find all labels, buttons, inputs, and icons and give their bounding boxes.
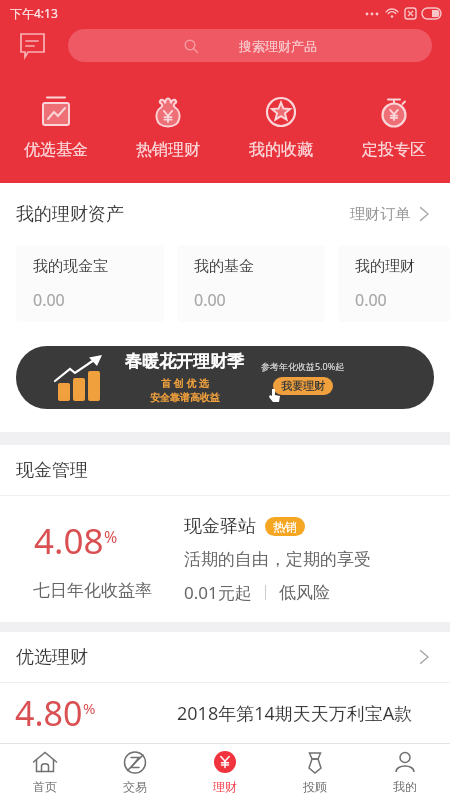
- staticText: 我的收藏: [249, 140, 313, 160]
- staticText: 4.80: [15, 690, 83, 736]
- staticText: 搜索理财产品: [239, 38, 317, 54]
- staticText: 安全靠谱高收益: [150, 391, 220, 404]
- staticText: 低风险: [279, 582, 330, 603]
- staticText: 0.00: [194, 289, 226, 311]
- button[interactable]: 理财: [180, 744, 270, 800]
- staticText: 我的理财: [355, 257, 415, 276]
- staticText: 投顾: [303, 779, 327, 794]
- staticText: 现金管理: [16, 459, 88, 482]
- button[interactable]: 我的现金宝: [16, 245, 164, 322]
- staticText: 0.00: [355, 289, 387, 311]
- button[interactable]: 我的收藏: [224, 95, 337, 160]
- button[interactable]: 首页: [0, 744, 90, 800]
- staticText: 热销理财: [136, 140, 200, 160]
- staticText: 0.00: [33, 289, 65, 311]
- staticText: 七日年化收益率: [33, 580, 152, 601]
- staticText: 现金驿站: [184, 515, 256, 538]
- staticText: 春暖花开理财季: [125, 351, 244, 372]
- staticText: 首 创 优 选: [161, 376, 209, 390]
- staticText: 定投专区: [362, 140, 426, 160]
- staticText: 0.01元起: [184, 581, 252, 604]
- button[interactable]: Messages: [17, 31, 47, 61]
- button[interactable]: 搜索理财产品: [68, 29, 432, 62]
- button[interactable]: 4.08: [0, 496, 450, 622]
- button[interactable]: 投顾: [270, 744, 360, 800]
- staticText: 优选理财: [16, 646, 88, 669]
- button[interactable]: 优选基金: [0, 95, 112, 160]
- staticText: 热销: [273, 519, 297, 534]
- button[interactable]: 我的: [360, 744, 450, 800]
- button[interactable]: 我的基金: [177, 245, 325, 322]
- staticText: 理财订单: [350, 205, 410, 224]
- staticText: %: [104, 526, 118, 548]
- button[interactable]: 春暖花开理财季: [16, 346, 434, 409]
- button[interactable]: 定投专区: [337, 95, 450, 160]
- staticText: 我的理财资产: [16, 203, 124, 226]
- staticText: 活期的自由，定期的享受: [184, 549, 371, 570]
- staticText: 2018年第14期天天万利宝A款: [177, 701, 413, 726]
- staticText: 我的基金: [194, 257, 254, 276]
- button[interactable]: 理财订单: [350, 204, 434, 224]
- staticText: 首页: [33, 779, 57, 794]
- button[interactable]: 我的理财: [338, 245, 450, 322]
- staticText: %: [83, 698, 96, 718]
- staticText: 交易: [123, 779, 147, 794]
- staticText: 我的现金宝: [33, 257, 108, 276]
- staticText: 我要理财: [281, 379, 325, 393]
- staticText: 理财: [213, 779, 237, 794]
- staticText: 我的: [393, 779, 417, 794]
- button[interactable]: 优选理财: [16, 632, 434, 682]
- staticText: 下午4:13: [10, 5, 58, 21]
- staticText: 优选基金: [24, 140, 88, 160]
- button[interactable]: 热销理财: [112, 95, 224, 160]
- staticText: 4.08: [34, 517, 104, 565]
- button[interactable]: 交易: [90, 744, 180, 800]
- staticText: 参考年化收益5.0%起: [261, 360, 345, 372]
